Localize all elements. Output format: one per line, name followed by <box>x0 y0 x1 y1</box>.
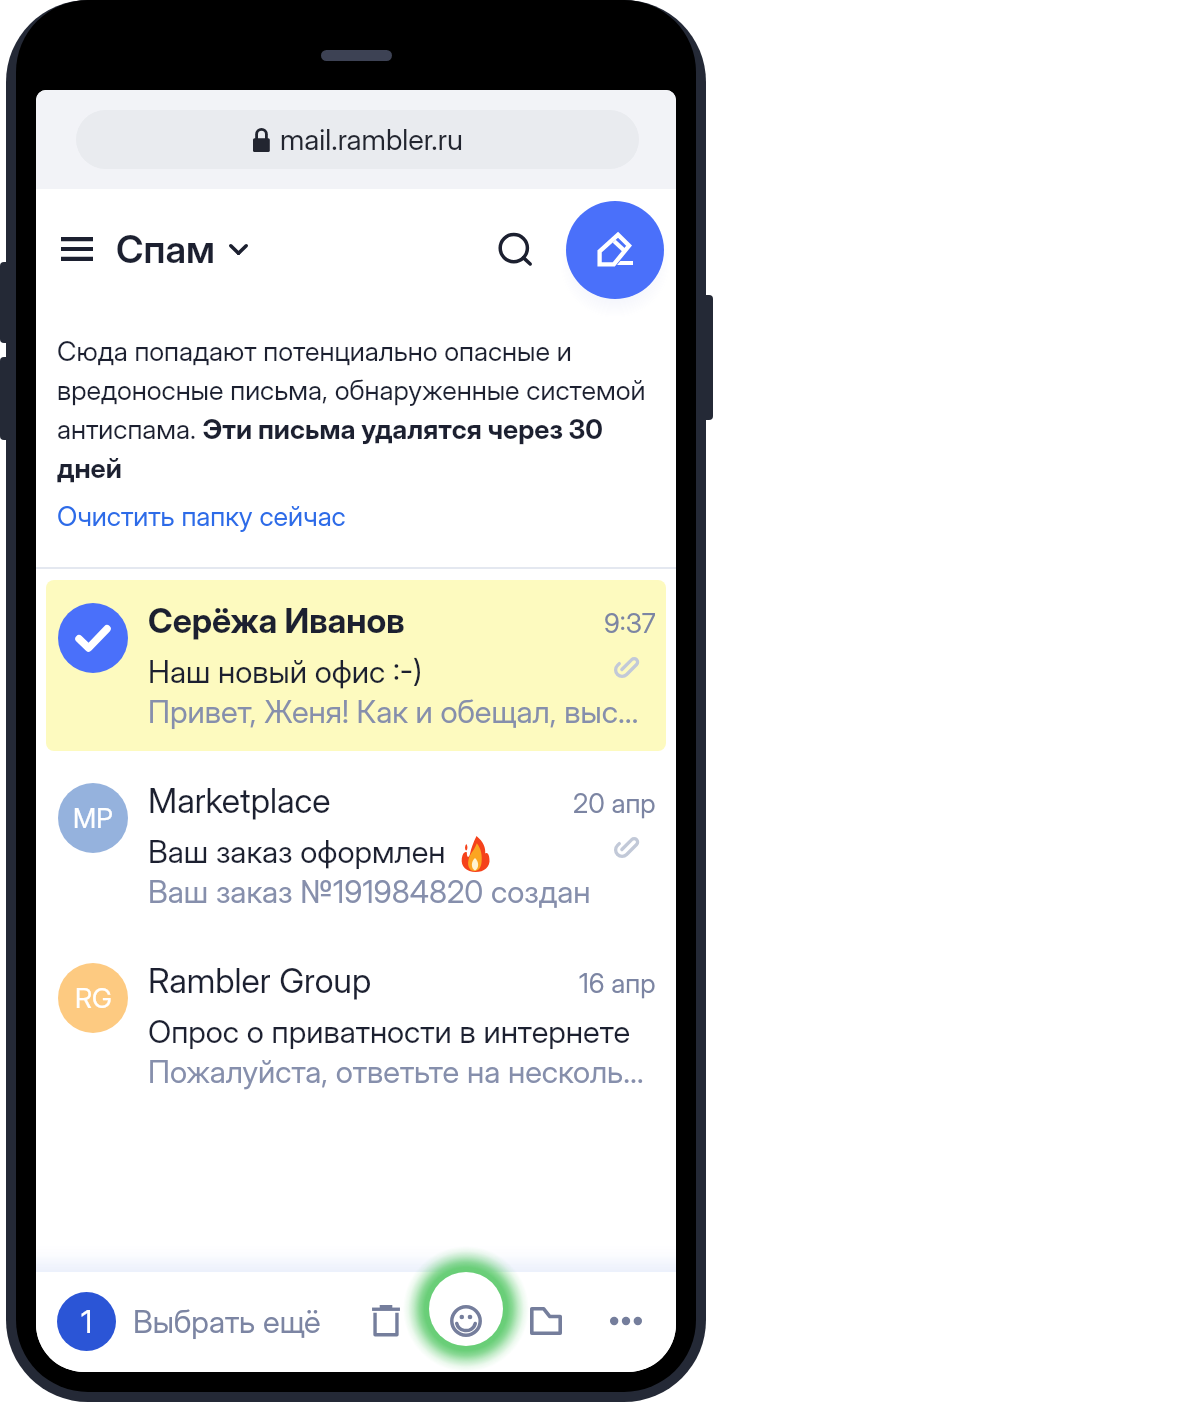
staticText: Rambler Group <box>148 960 372 1001</box>
button[interactable]: Спам <box>116 217 248 281</box>
staticText: Опрос о приватности в интернете <box>148 1013 631 1051</box>
button[interactable]: Серёжа Иванов <box>36 580 676 760</box>
button[interactable]: More <box>598 1293 654 1349</box>
staticText: Выбрать ещё <box>133 1303 321 1341</box>
staticText: Наш новый офис :-) <box>148 653 423 691</box>
button[interactable]: Folder <box>518 1293 574 1349</box>
staticText: Сюда попадают потенциально опасные и вре… <box>57 335 651 485</box>
button[interactable]: Search <box>481 214 549 282</box>
button[interactable]: Delete <box>358 1293 414 1349</box>
button[interactable]: Очистить папку сейчас <box>57 500 346 533</box>
staticText: 9:37 <box>604 607 656 640</box>
staticText: Пожалуйста, ответьте на несколь… <box>148 1053 644 1091</box>
button[interactable]: 1 <box>57 1292 116 1351</box>
button[interactable]: Emoji <box>429 1284 503 1358</box>
staticText: 16 апр <box>579 967 656 1000</box>
staticText: Ваш заказ оформлен <box>148 833 446 871</box>
staticText: Серёжа Иванов <box>148 600 405 641</box>
staticText: Привет, Женя! Как и обещал, выс… <box>148 693 639 731</box>
button[interactable]: Menu <box>44 221 109 277</box>
staticText: Очистить папку сейчас <box>57 500 346 533</box>
staticText: 1 <box>81 1303 93 1341</box>
button[interactable]: mail.rambler.ru <box>76 110 639 169</box>
staticText: MP <box>73 802 113 835</box>
staticText: 20 апр <box>573 787 656 820</box>
staticText: Ваш заказ №191984820 создан <box>148 873 591 911</box>
staticText: mail.rambler.ru <box>280 122 463 157</box>
other: Attachment <box>606 646 646 686</box>
other: Attachment <box>606 826 646 866</box>
button[interactable]: Выбрать ещё <box>133 1292 321 1351</box>
staticText: Спам <box>116 226 215 272</box>
button[interactable]: MP <box>36 760 676 940</box>
staticText: Marketplace <box>148 780 331 821</box>
button[interactable]: RG <box>36 940 676 1120</box>
staticText: RG <box>75 982 112 1015</box>
button[interactable]: Compose <box>566 201 664 299</box>
